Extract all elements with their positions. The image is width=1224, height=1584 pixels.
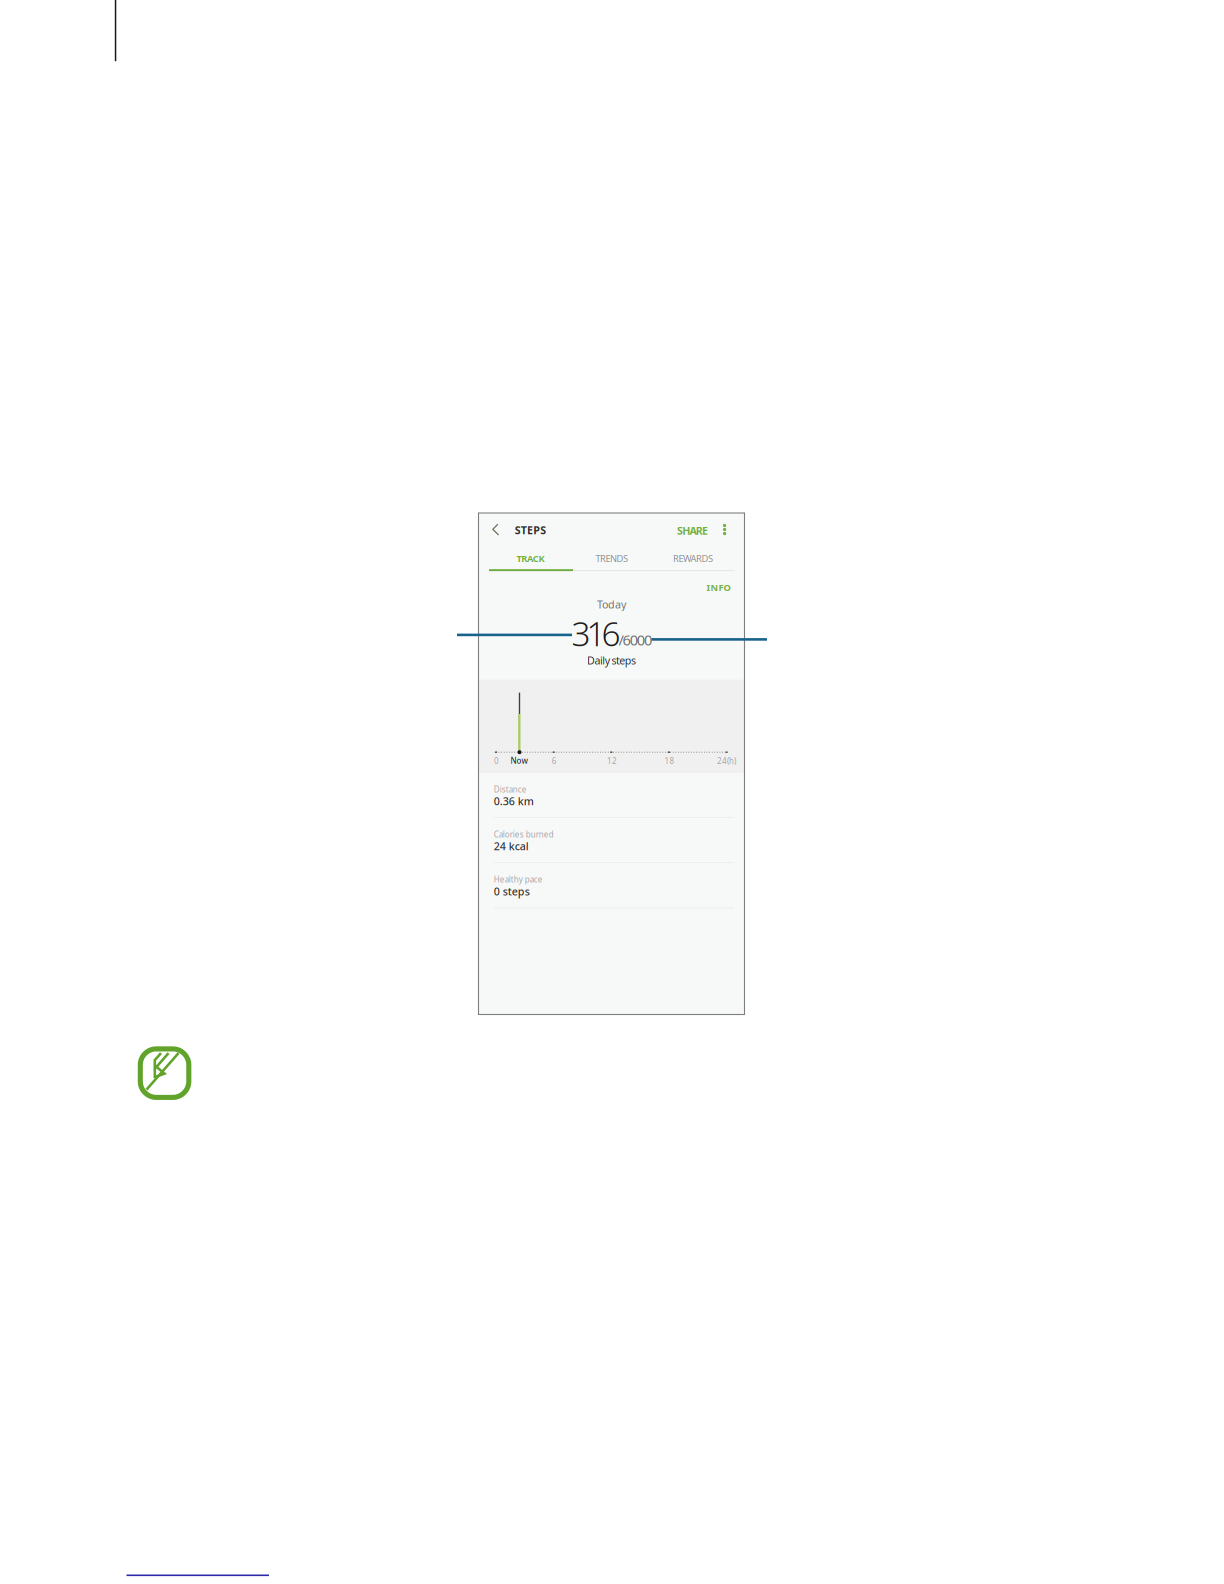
staticText: 0: [494, 756, 499, 766]
staticText: 24(h): [717, 756, 736, 766]
button[interactable]: TRACK: [489, 545, 571, 571]
staticText: STEPS: [515, 523, 546, 537]
staticText: 12: [607, 756, 617, 766]
button[interactable]: Healthy pace: [494, 863, 734, 907]
staticText: 6: [552, 756, 557, 766]
staticText: SHARE: [677, 523, 708, 538]
button[interactable]: TRENDS: [571, 545, 653, 571]
staticText: INFO: [706, 581, 730, 594]
staticText: 18: [665, 756, 675, 766]
button[interactable]: More options: [714, 515, 736, 543]
staticText: Calories burned: [494, 829, 554, 840]
staticText: TRACK: [516, 552, 545, 565]
staticText: Daily steps: [587, 653, 636, 667]
staticText: Now: [511, 755, 528, 766]
staticText: Healthy pace: [494, 874, 543, 885]
staticText: Distance: [494, 784, 527, 795]
staticText: TRENDS: [595, 552, 628, 565]
button[interactable]: INFO: [696, 576, 740, 598]
button[interactable]: SHARE: [667, 516, 717, 544]
staticText: /6000: [618, 630, 652, 650]
staticText: 0.36 km: [494, 794, 534, 808]
staticText: 316: [571, 611, 620, 656]
button[interactable]: Distance: [494, 773, 734, 817]
staticText: 24 kcal: [494, 839, 529, 853]
button[interactable]: Calories burned: [494, 818, 734, 862]
button[interactable]: REWARDS: [652, 545, 734, 571]
staticText: Today: [597, 597, 626, 611]
staticText: 0 steps: [494, 884, 530, 898]
staticText: REWARDS: [673, 552, 713, 565]
button[interactable]: Back: [481, 515, 511, 545]
